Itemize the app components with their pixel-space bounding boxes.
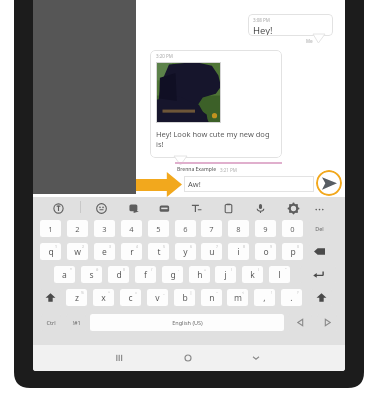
staticText: l <box>278 269 281 281</box>
staticText: 1 <box>48 224 53 234</box>
staticText: e <box>102 246 107 258</box>
button[interactable]: d <box>108 266 129 283</box>
button[interactable]: 1 <box>40 220 61 237</box>
button[interactable]: m <box>227 289 248 306</box>
button[interactable]: b <box>174 289 195 306</box>
staticText: 3 <box>102 224 107 234</box>
button[interactable]: o <box>255 243 276 260</box>
button[interactable]: q <box>40 243 61 260</box>
button[interactable]: j <box>215 266 236 283</box>
button[interactable]: u <box>201 243 222 260</box>
button[interactable]: c <box>120 289 141 306</box>
staticText: Brenna Example <box>177 166 217 173</box>
staticText: 5 <box>163 244 166 249</box>
staticText: ? <box>297 290 299 295</box>
button[interactable]: . <box>281 289 302 306</box>
button[interactable]: Ctrl <box>41 314 61 331</box>
button[interactable]: Home <box>176 346 200 370</box>
button[interactable]: English (US) <box>90 314 284 331</box>
button[interactable]: Shift <box>311 289 332 306</box>
button[interactable]: Left <box>288 314 312 331</box>
staticText: 0 <box>290 224 295 234</box>
staticText: < <box>242 290 245 295</box>
button[interactable]: w <box>67 243 88 260</box>
button[interactable]: Keyboard option 5 <box>187 199 205 217</box>
staticText: s <box>89 269 94 281</box>
button[interactable]: z <box>66 289 87 306</box>
button[interactable]: 2 <box>67 220 88 237</box>
button[interactable]: s <box>81 266 102 283</box>
button[interactable]: n <box>201 289 222 306</box>
button[interactable]: Keyboard option 4 <box>155 199 173 217</box>
button[interactable]: Shift <box>40 289 61 306</box>
button[interactable]: 0 <box>282 220 303 237</box>
staticText: c <box>128 292 133 304</box>
staticText: 2 <box>75 224 80 234</box>
button[interactable]: 6 <box>175 220 196 237</box>
button[interactable]: Keyboard option 7 <box>251 199 269 217</box>
staticText: 7 <box>209 224 214 234</box>
button[interactable]: 3 <box>94 220 115 237</box>
button[interactable]: f <box>135 266 156 283</box>
button[interactable]: Keyboard option 1 <box>49 199 67 217</box>
staticText: Aw! <box>188 179 201 189</box>
staticText: t <box>157 246 161 258</box>
staticText: f <box>144 269 147 281</box>
staticText: 0 <box>297 244 300 249</box>
button[interactable]: Back <box>244 346 268 370</box>
button[interactable]: 5 <box>148 220 169 237</box>
button[interactable]: r <box>121 243 142 260</box>
staticText: a <box>62 269 67 281</box>
button[interactable]: Keyboard option 2 <box>92 199 110 217</box>
button[interactable]: x <box>93 289 114 306</box>
button[interactable]: Keyboard option 9 <box>310 199 328 217</box>
button[interactable]: 4 <box>121 220 142 237</box>
button[interactable]: Keyboard option 8 <box>284 199 302 217</box>
staticText: o <box>263 246 269 258</box>
staticText: / <box>151 267 153 272</box>
staticText: , <box>263 292 266 304</box>
button[interactable]: t <box>148 243 169 260</box>
button[interactable]: h <box>189 266 210 283</box>
button[interactable]: y <box>175 243 196 260</box>
button[interactable]: v <box>147 289 168 306</box>
button[interactable]: Backspace <box>309 243 330 260</box>
button[interactable]: Keyboard option 3 <box>125 199 143 217</box>
staticText: - <box>178 267 180 272</box>
staticText: r <box>130 246 134 258</box>
button[interactable]: 9 <box>255 220 276 237</box>
staticText: * <box>70 267 72 272</box>
button[interactable]: Send <box>316 170 342 196</box>
staticText: . <box>290 292 293 304</box>
staticText: 6 <box>190 244 193 249</box>
button[interactable]: 8 <box>228 220 249 237</box>
staticText: h <box>197 269 203 281</box>
button[interactable]: Aw! <box>184 176 314 192</box>
button[interactable]: k <box>242 266 263 283</box>
button[interactable]: !#1 <box>66 314 86 331</box>
button[interactable]: 7 <box>201 220 222 237</box>
button[interactable]: , <box>254 289 275 306</box>
staticText: " <box>285 267 287 272</box>
staticText: _ <box>163 290 165 295</box>
staticText: Ctrl <box>46 319 56 326</box>
staticText: ~ <box>216 290 219 295</box>
staticText: i <box>237 246 240 258</box>
button[interactable]: Del <box>309 220 330 237</box>
button[interactable]: g <box>162 266 183 283</box>
button[interactable]: Recents <box>107 346 131 370</box>
button[interactable]: i <box>228 243 249 260</box>
button[interactable]: Keyboard option 6 <box>219 199 237 217</box>
button[interactable]: Enter <box>300 266 336 283</box>
button[interactable]: e <box>94 243 115 260</box>
staticText: Me <box>306 38 313 44</box>
button[interactable]: a <box>54 266 75 283</box>
button[interactable]: l <box>269 266 290 283</box>
staticText: 8 <box>236 224 241 234</box>
staticText: 6 <box>183 224 188 234</box>
staticText: = <box>135 290 138 295</box>
button[interactable]: Right <box>317 314 337 331</box>
button[interactable]: p <box>282 243 303 260</box>
staticText: n <box>209 292 215 304</box>
staticText: 9 <box>270 244 273 249</box>
